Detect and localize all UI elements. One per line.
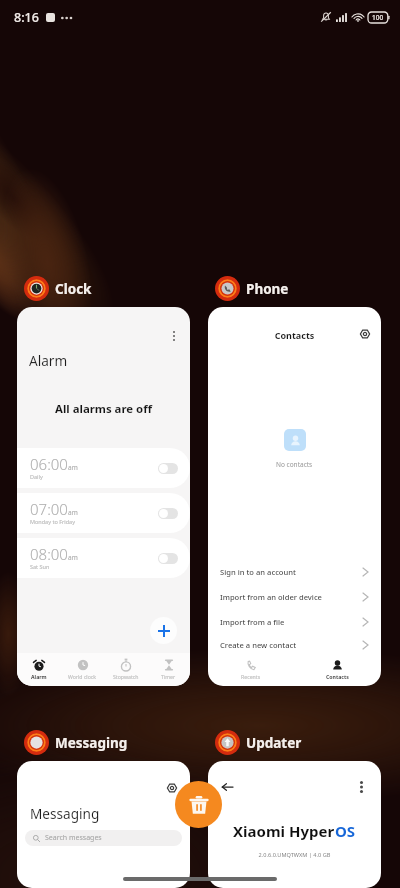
staticText: Xiaomi Hyper [233, 821, 335, 841]
staticText: 100 [372, 13, 384, 22]
staticText: Stopwatch [113, 673, 139, 680]
button[interactable]: 07:00 [17, 493, 190, 533]
button[interactable]: More options [17, 307, 190, 686]
staticText: Updater [246, 734, 302, 752]
button[interactable]: Search messages [25, 830, 182, 846]
other: More options [360, 781, 363, 793]
staticText: Create a new contact [220, 640, 297, 650]
staticText: Contacts [208, 329, 381, 341]
staticText: am [68, 553, 78, 562]
button[interactable]: Toggle alarm 08:00 [158, 553, 178, 564]
button[interactable]: Import from a file [208, 611, 381, 633]
staticText: Messaging [30, 804, 100, 823]
button[interactable]: Contacts [208, 307, 381, 686]
button[interactable]: Back [208, 761, 381, 888]
staticText: OS [335, 821, 356, 841]
staticText: Phone [246, 280, 289, 298]
staticText: Search messages [45, 833, 102, 843]
staticText: Daily [30, 473, 43, 480]
button[interactable]: Clear all [175, 781, 222, 828]
button[interactable]: Stopwatch [104, 653, 147, 686]
button[interactable]: 06:00 [17, 448, 190, 488]
staticText: Sign in to an account [220, 567, 296, 577]
staticText: Import from a file [220, 617, 285, 627]
staticText: All alarms are off [17, 401, 190, 417]
staticText: Sat Sun [30, 563, 50, 570]
button[interactable]: Alarm [17, 653, 61, 686]
staticText: No contacts [276, 460, 313, 469]
staticText: Contacts [326, 673, 349, 680]
staticText: Alarm [29, 351, 68, 370]
button[interactable]: Create a new contact [208, 634, 381, 656]
button[interactable]: Add alarm [150, 617, 177, 644]
button[interactable]: Import from an older device [208, 586, 381, 608]
button[interactable]: World clock [61, 653, 104, 686]
button[interactable]: 08:00 [17, 538, 190, 578]
staticText: am [68, 463, 78, 472]
button[interactable]: Recents [208, 654, 294, 686]
button[interactable]: Toggle alarm 06:00 [158, 463, 178, 474]
other: More options [173, 331, 175, 341]
button[interactable]: Contacts [294, 654, 381, 686]
other: Settings [167, 783, 177, 793]
staticText: World clock [68, 673, 97, 680]
staticText: Alarm [31, 673, 47, 680]
other: Settings [360, 329, 370, 339]
button[interactable]: Toggle alarm 07:00 [158, 508, 178, 519]
staticText: 07:00 [30, 499, 68, 519]
staticText: Monday to Friday [30, 518, 75, 525]
staticText: Import from an older device [220, 592, 322, 602]
staticText: 2.0.6.0.UMQTWXM | 4.0 GB [208, 851, 381, 859]
staticText: Recents [241, 673, 261, 680]
button[interactable]: Sign in to an account [208, 561, 381, 583]
staticText: 06:00 [30, 454, 68, 474]
staticText: am [68, 508, 78, 517]
staticText: 8:16 [14, 9, 39, 26]
other: Back [222, 781, 233, 792]
staticText: Messaging [55, 734, 128, 752]
staticText: 08:00 [30, 544, 68, 564]
staticText: Clock [55, 280, 92, 298]
button[interactable]: Settings [17, 761, 190, 888]
staticText: Timer [161, 673, 176, 680]
button[interactable]: Timer [147, 653, 190, 686]
